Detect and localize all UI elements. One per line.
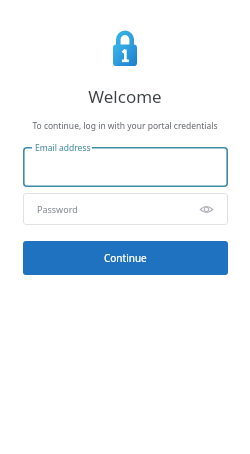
staticText: Email address xyxy=(35,142,91,154)
button[interactable]: Password xyxy=(23,193,228,225)
button[interactable]: Email address xyxy=(23,147,228,187)
staticText: Welcome xyxy=(88,85,162,108)
button[interactable]: Show password xyxy=(198,201,214,217)
staticText: Password xyxy=(37,203,198,215)
staticText: Continue xyxy=(104,251,147,265)
button[interactable]: Continue xyxy=(23,241,228,275)
staticText: To continue, log in with your portal cre… xyxy=(32,120,218,132)
